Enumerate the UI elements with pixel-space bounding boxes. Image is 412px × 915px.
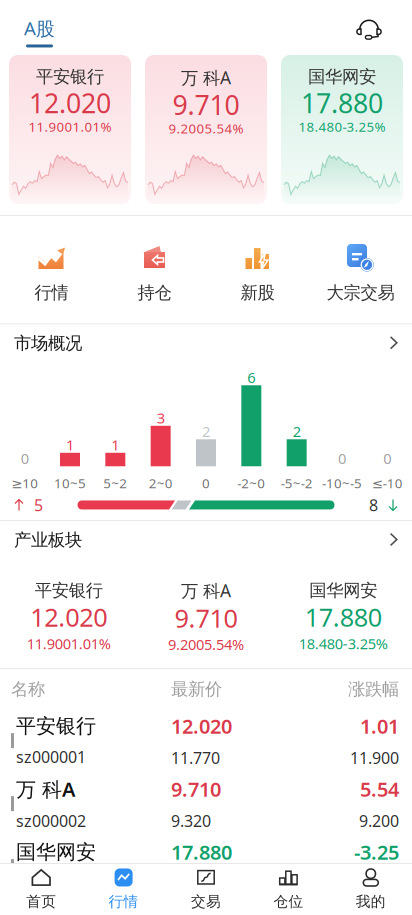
button[interactable]: 仓位 <box>247 868 330 910</box>
staticText: 9.320 <box>171 810 211 831</box>
staticText: 2~0 <box>149 474 173 492</box>
staticText: 12.020 <box>29 85 111 121</box>
staticText: 市场概况 <box>14 333 82 354</box>
button[interactable]: 大宗交易 <box>309 243 412 303</box>
staticText: 5.54 <box>360 776 399 802</box>
staticText: 大宗交易 <box>326 282 394 303</box>
button[interactable]: 交易 <box>165 868 247 910</box>
staticText: 3 <box>157 408 165 428</box>
staticText: 0 <box>202 474 210 492</box>
staticText: ≥10 <box>11 474 38 492</box>
staticText: ≤-10 <box>372 474 403 492</box>
staticText: 8 <box>369 494 378 516</box>
staticText: 国华网安 <box>308 66 376 87</box>
staticText: sz000001 <box>16 746 86 767</box>
staticText: 1.01% <box>72 118 111 135</box>
button[interactable]: 平安银行 <box>0 709 412 772</box>
staticText: 5~2 <box>103 474 127 492</box>
staticText: -10~-5 <box>322 474 362 492</box>
button[interactable]: 国华网安 <box>281 55 403 204</box>
staticText: -5~-2 <box>281 474 313 492</box>
staticText: 新股 <box>240 282 274 303</box>
staticText: 0 <box>338 449 346 468</box>
staticText: 6 <box>247 368 255 387</box>
staticText: A股 <box>24 16 55 40</box>
staticText: 17.880 <box>171 839 232 865</box>
button[interactable]: 万 科A <box>145 55 267 204</box>
staticText: 11.900 <box>350 747 399 768</box>
staticText: 17.880 <box>301 85 383 121</box>
staticText: 名称 <box>11 678 45 700</box>
staticText: 最新价 <box>171 678 222 700</box>
staticText: 1 <box>111 435 119 455</box>
button[interactable]: 行情 <box>0 243 103 303</box>
staticText: -3.25% <box>343 634 388 653</box>
staticText: 9.710 <box>174 601 237 635</box>
staticText: sz000002 <box>16 810 86 831</box>
staticText: 我的 <box>356 892 386 910</box>
button[interactable]: 首页 <box>0 868 82 910</box>
staticText: 18.480 <box>350 873 399 894</box>
staticText: 9.710 <box>172 87 239 122</box>
staticText: 11.770 <box>171 747 220 768</box>
staticText: 万 科A <box>16 776 75 802</box>
staticText: 首页 <box>26 892 56 910</box>
button[interactable]: 万 科A <box>137 579 275 654</box>
staticText: 9.200 <box>359 810 399 831</box>
staticText: 12.020 <box>171 713 232 739</box>
staticText: sz000004 <box>16 872 86 893</box>
staticText: 国华网安 <box>16 840 96 864</box>
staticText: 产业板块 <box>14 529 82 551</box>
staticText: -3.25 <box>354 839 399 865</box>
staticText: 17.200 <box>171 873 220 894</box>
staticText: 1.01 <box>360 713 399 739</box>
staticText: 5.54% <box>204 119 243 137</box>
button[interactable]: 平安银行 <box>0 580 137 653</box>
button[interactable]: 国华网安 <box>275 580 412 653</box>
staticText: 国华网安 <box>309 580 377 601</box>
staticText: 0 <box>383 449 391 468</box>
staticText: 10~5 <box>54 474 86 492</box>
staticText: 5 <box>34 494 43 516</box>
button[interactable]: 产业板块 <box>0 521 412 559</box>
staticText: 17.880 <box>305 600 382 634</box>
staticText: 持仓 <box>137 282 171 303</box>
button[interactable]: 国华网安 <box>0 835 412 898</box>
staticText: 1 <box>66 435 74 455</box>
staticText: 平安银行 <box>36 66 104 87</box>
staticText: 1.01% <box>71 634 111 653</box>
staticText: 0 <box>21 449 29 468</box>
staticText: 18.480 <box>298 118 342 135</box>
staticText: 涨跌幅 <box>348 678 399 700</box>
button[interactable]: 万 科A <box>0 772 412 835</box>
button[interactable]: 新股 <box>206 243 309 303</box>
staticText: 行情 <box>109 892 139 910</box>
button[interactable]: 我的 <box>330 868 412 910</box>
staticText: 交易 <box>191 892 221 910</box>
staticText: 2 <box>202 422 210 441</box>
staticText: 12.020 <box>30 600 107 634</box>
staticText: 平安银行 <box>16 714 96 738</box>
button[interactable]: 客服 <box>356 9 412 41</box>
button[interactable]: 市场概况 <box>0 324 412 362</box>
button[interactable]: A股 <box>0 4 65 47</box>
staticText: 2 <box>293 422 301 441</box>
staticText: 9.200 <box>168 119 204 137</box>
staticText: 9.200 <box>168 635 204 654</box>
staticText: -3.25% <box>342 118 385 135</box>
staticText: 11.900 <box>27 634 71 653</box>
staticText: 5.54% <box>204 635 244 654</box>
staticText: 万 科A <box>181 579 231 602</box>
staticText: 行情 <box>34 282 68 303</box>
staticText: 9.710 <box>171 776 221 802</box>
button[interactable]: 行情 <box>82 868 165 910</box>
button[interactable]: 平安银行 <box>9 55 131 204</box>
button[interactable]: 持仓 <box>103 243 206 303</box>
staticText: 仓位 <box>273 892 303 910</box>
staticText: 平安银行 <box>35 580 103 601</box>
staticText: -2~0 <box>237 474 265 492</box>
staticText: 11.900 <box>28 118 72 135</box>
staticText: 万 科A <box>181 66 231 89</box>
staticText: 18.480 <box>299 634 343 653</box>
